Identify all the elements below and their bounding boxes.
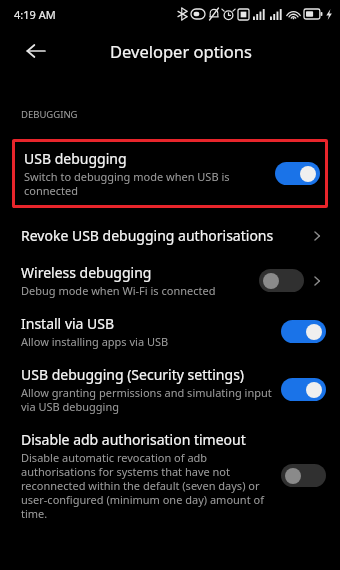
staticText: Disable automatic revocation of adb auth… bbox=[21, 450, 264, 521]
staticText: DEBUGGING bbox=[21, 108, 78, 121]
button[interactable]: Toggle on bbox=[281, 320, 326, 343]
button[interactable]: Revoke USB debugging authorisations bbox=[0, 226, 340, 245]
staticText: Install via USB bbox=[21, 314, 115, 333]
button[interactable]: USB debugging bbox=[15, 142, 325, 205]
staticText: Developer options bbox=[110, 40, 252, 62]
staticText: Debug mode when Wi-Fi is connected bbox=[21, 283, 216, 298]
staticText: 4:19 AM bbox=[14, 7, 56, 22]
staticText: USB debugging (Security settings) bbox=[21, 365, 245, 384]
staticText: USB debugging bbox=[24, 149, 127, 168]
button[interactable]: Open bbox=[308, 227, 326, 245]
button[interactable]: Toggle on bbox=[281, 378, 326, 401]
button[interactable]: Wireless debugging bbox=[0, 263, 340, 298]
staticText: Disable adb authorisation timeout bbox=[21, 430, 246, 449]
button[interactable]: USB debugging (Security settings) bbox=[0, 365, 340, 414]
staticText: Wireless debugging bbox=[21, 263, 152, 282]
button[interactable]: Toggle off bbox=[281, 464, 326, 487]
button[interactable]: Open bbox=[308, 272, 326, 290]
staticText: Allow installing apps via USB bbox=[21, 334, 169, 349]
button[interactable]: Toggle on bbox=[275, 162, 320, 185]
button[interactable]: Back bbox=[16, 31, 56, 71]
button[interactable]: Install via USB bbox=[0, 314, 340, 349]
staticText: Revoke USB debugging authorisations bbox=[21, 226, 274, 245]
button[interactable]: Toggle off bbox=[259, 269, 304, 292]
staticText: Switch to debugging mode when USB is con… bbox=[24, 169, 230, 198]
button[interactable]: Disable adb authorisation timeout bbox=[0, 430, 340, 521]
staticText: Allow granting permissions and simulatin… bbox=[21, 385, 272, 414]
